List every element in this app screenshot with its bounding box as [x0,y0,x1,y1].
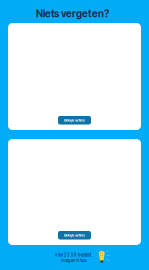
button[interactable]: Bekijk acties [58,231,91,239]
button[interactable]: Bekijk acties [58,116,91,124]
staticText: Bekijk acties [64,233,85,237]
staticText: Niets vergeten? [36,7,109,20]
staticText: Bekijk acties [64,118,85,122]
staticText: Voor 23.59 besteld, morgen in huis [54,252,92,263]
